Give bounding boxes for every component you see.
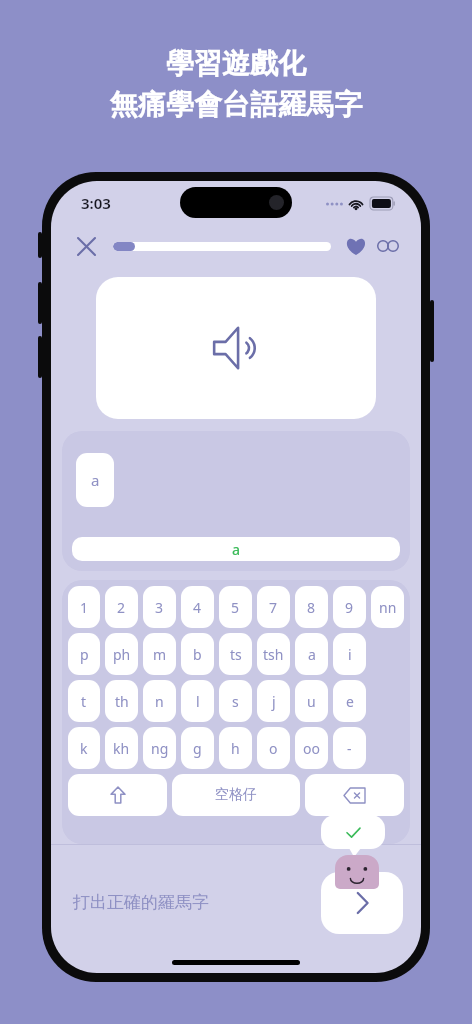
button[interactable]: p (68, 633, 100, 675)
staticText: 無痛學會台語羅馬字 (110, 87, 362, 122)
button[interactable]: Next (321, 872, 403, 934)
staticText: n (155, 692, 164, 711)
staticText: th (115, 692, 129, 711)
button[interactable]: n (143, 680, 176, 722)
staticText: oo (303, 739, 320, 758)
button[interactable]: 8 (295, 586, 328, 628)
staticText: k (80, 739, 88, 758)
staticText: 9 (345, 598, 354, 617)
button[interactable]: Play audio (96, 277, 376, 419)
staticText: 5 (231, 598, 240, 617)
staticText: 3 (155, 598, 164, 617)
staticText: t (81, 692, 87, 711)
staticText: b (193, 645, 202, 664)
staticText: ph (113, 645, 131, 664)
staticText: m (153, 645, 167, 664)
button[interactable]: Delete (305, 774, 404, 816)
staticText: 空格仔 (215, 786, 257, 804)
button[interactable]: Shift (68, 774, 167, 816)
button[interactable]: t (68, 680, 100, 722)
staticText: 1 (80, 598, 89, 617)
button[interactable]: - (333, 727, 366, 769)
button[interactable]: h (219, 727, 252, 769)
staticText: 8 (307, 598, 316, 617)
button[interactable]: g (181, 727, 214, 769)
staticText: 打出正確的羅馬字 (73, 892, 209, 913)
staticText: s (232, 692, 239, 711)
staticText: 7 (269, 598, 278, 617)
button[interactable]: 9 (333, 586, 366, 628)
staticText: kh (113, 739, 130, 758)
button[interactable]: Hearts (343, 233, 369, 259)
button[interactable]: a (295, 633, 328, 675)
button[interactable]: ts (219, 633, 252, 675)
button[interactable]: nn (371, 586, 404, 628)
button[interactable]: 4 (181, 586, 214, 628)
button[interactable]: oo (295, 727, 328, 769)
button[interactable]: tsh (257, 633, 290, 675)
staticText: 2 (117, 598, 126, 617)
button[interactable]: o (257, 727, 290, 769)
button[interactable]: kh (105, 727, 138, 769)
button[interactable]: 5 (219, 586, 252, 628)
button[interactable]: ng (143, 727, 176, 769)
button[interactable]: e (333, 680, 366, 722)
button[interactable]: m (143, 633, 176, 675)
button[interactable]: l (181, 680, 214, 722)
staticText: - (347, 739, 352, 758)
staticText: i (348, 645, 352, 664)
button[interactable]: ph (105, 633, 138, 675)
staticText: e (346, 692, 354, 711)
button[interactable]: 2 (105, 586, 138, 628)
staticText: j (272, 692, 276, 711)
staticText: 4 (193, 598, 202, 617)
button[interactable]: s (219, 680, 252, 722)
staticText: tsh (263, 645, 284, 664)
staticText: 3:03 (81, 193, 111, 213)
staticText: a (232, 540, 241, 559)
button[interactable]: i (333, 633, 366, 675)
staticText: h (231, 739, 240, 758)
staticText: p (80, 645, 89, 664)
button[interactable]: th (105, 680, 138, 722)
button[interactable]: Close (71, 231, 101, 261)
staticText: nn (379, 598, 397, 617)
staticText: g (193, 739, 202, 758)
staticText: a (91, 470, 100, 490)
staticText: ng (151, 739, 169, 758)
button[interactable]: 3 (143, 586, 176, 628)
staticText: ts (230, 645, 242, 664)
staticText: o (269, 739, 278, 758)
button[interactable]: Unlimited (375, 233, 401, 259)
staticText: a (308, 645, 316, 664)
staticText: l (196, 692, 200, 711)
button[interactable]: j (257, 680, 290, 722)
staticText: 學習遊戲化 (166, 46, 306, 81)
button[interactable]: b (181, 633, 214, 675)
button[interactable]: 1 (68, 586, 100, 628)
button[interactable]: u (295, 680, 328, 722)
button[interactable]: 空格仔 (172, 774, 300, 816)
button[interactable]: k (68, 727, 100, 769)
button[interactable]: 7 (257, 586, 290, 628)
button[interactable]: a (76, 453, 114, 507)
staticText: u (307, 692, 316, 711)
